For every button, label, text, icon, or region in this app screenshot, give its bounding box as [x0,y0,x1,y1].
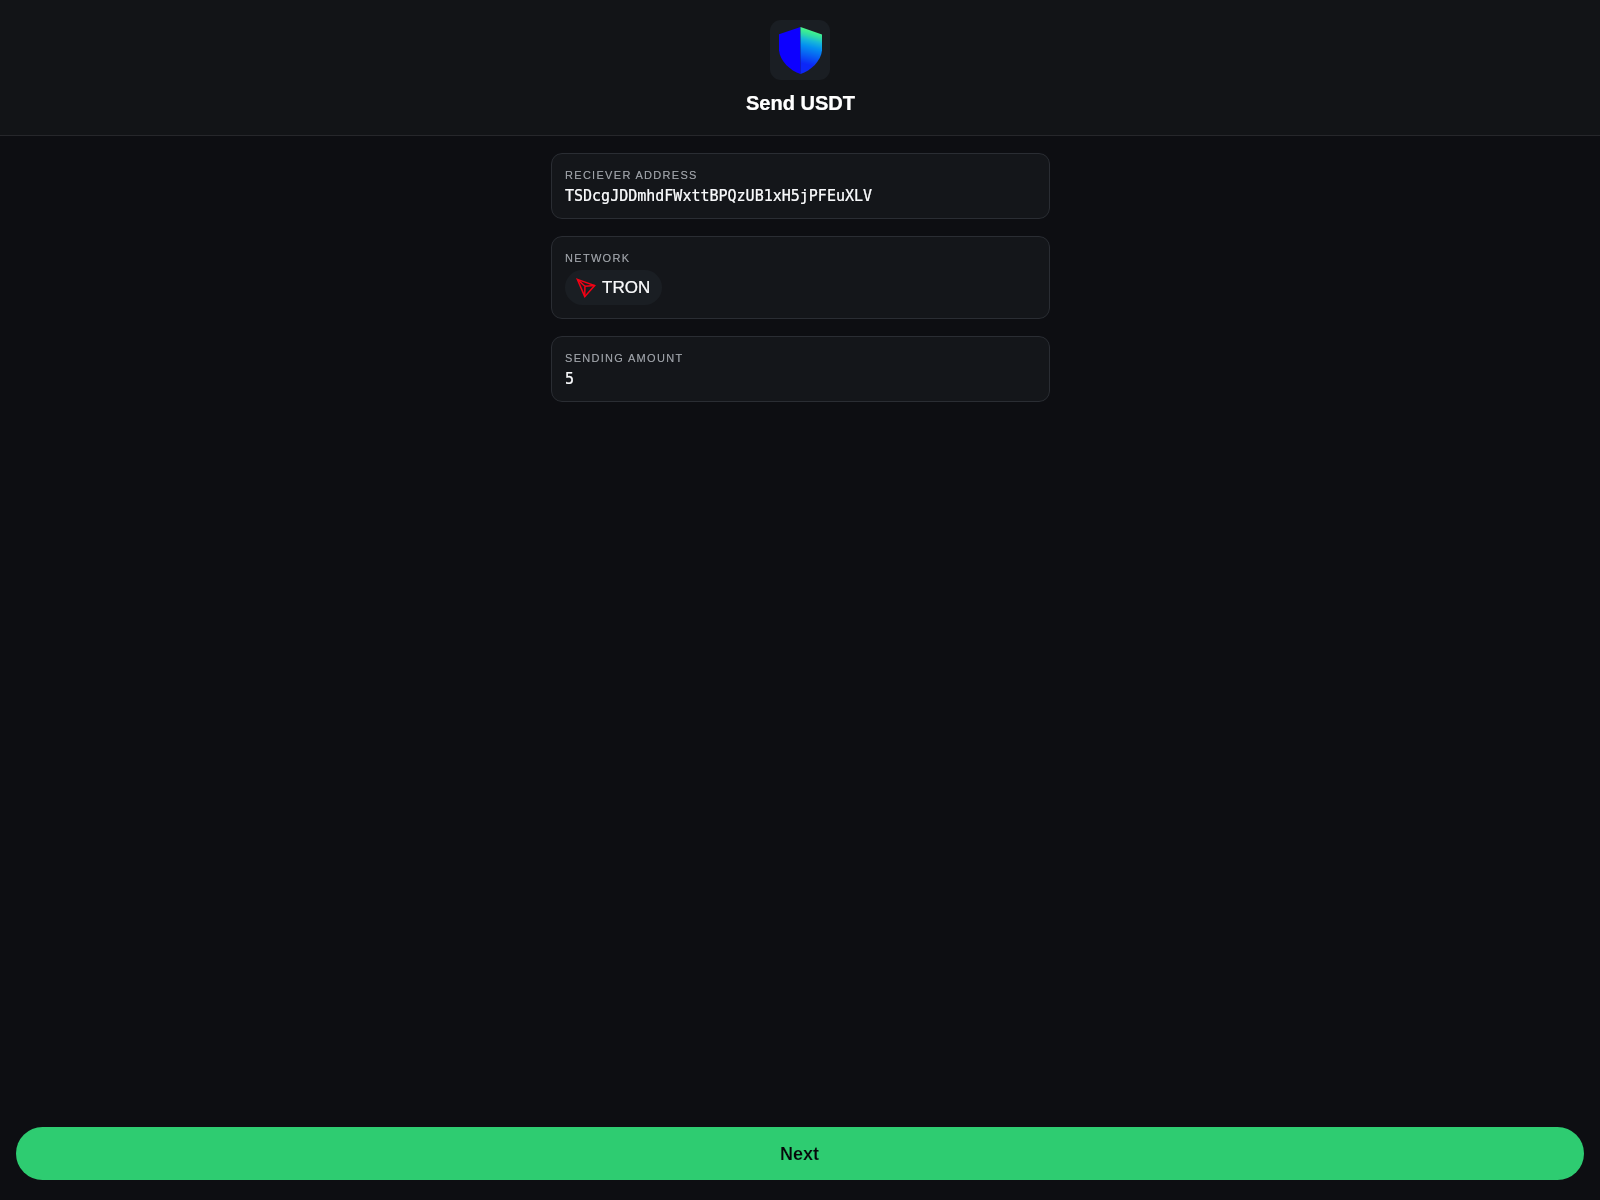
staticText: Send USDT [746,92,855,114]
button[interactable]: RECIEVER ADDRESS [551,153,1050,219]
button[interactable]: NETWORK [551,236,1050,319]
staticText: RECIEVER ADDRESS [565,169,698,181]
staticText: NETWORK [565,252,631,264]
staticText: Next [780,1144,820,1164]
staticText: 5 [565,370,575,387]
button[interactable]: SENDING AMOUNT [551,336,1050,402]
button[interactable]: TRON [565,270,662,305]
staticText: SENDING AMOUNT [565,352,684,364]
staticText: TSDcgJDDmhdFWxttBPQzUB1xH5jPFEuXLV [565,187,873,204]
other: App icon [770,20,830,80]
button[interactable]: Next [16,1127,1584,1180]
staticText: TRON [602,278,651,297]
